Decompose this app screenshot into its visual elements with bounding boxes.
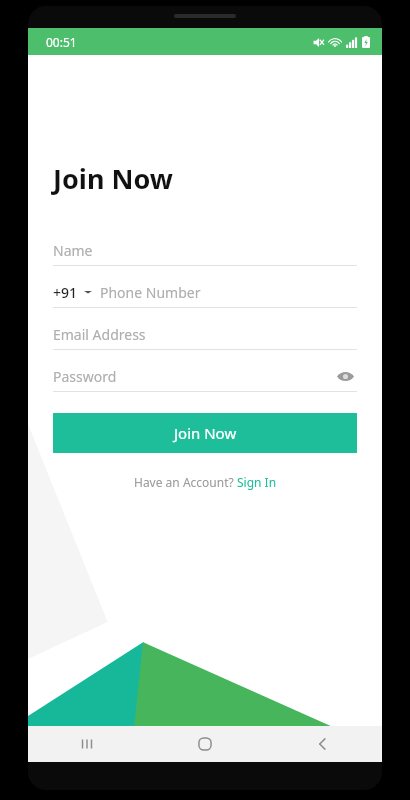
button[interactable]: Show password (333, 364, 357, 388)
button[interactable]: Name (53, 238, 357, 266)
staticText: Phone Number (100, 283, 201, 302)
staticText: Join Now (53, 160, 173, 197)
button[interactable]: Password (53, 364, 357, 392)
button[interactable]: Home (146, 726, 264, 762)
button[interactable]: +91 (53, 280, 357, 308)
staticText: Password (53, 367, 333, 386)
staticText: 00:51 (46, 34, 77, 50)
staticText: Sign In (237, 474, 277, 490)
staticText: +91 (53, 283, 78, 302)
button[interactable]: Email Address (53, 322, 357, 350)
button[interactable]: Recents (28, 726, 146, 762)
staticText: Email Address (53, 325, 146, 344)
staticText: Name (53, 241, 93, 260)
staticText: Join Now (174, 423, 237, 443)
staticText: Have an Account? (134, 474, 237, 490)
button[interactable]: Join Now (53, 413, 357, 453)
button[interactable]: Sign In (237, 474, 277, 490)
button[interactable]: Back (264, 726, 382, 762)
